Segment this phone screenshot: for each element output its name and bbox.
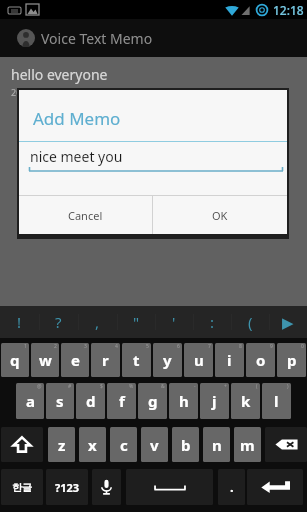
- staticText: 0: [301, 343, 304, 350]
- button[interactable]: z: [48, 427, 75, 462]
- staticText: Add Memo: [33, 107, 121, 130]
- staticText: 한글: [12, 481, 32, 494]
- staticText: (: [248, 312, 253, 332]
- staticText: -: [194, 383, 196, 390]
- button[interactable]: e: [61, 343, 89, 377]
- button[interactable]: t: [122, 343, 151, 377]
- staticText: o: [256, 350, 266, 370]
- staticText: m: [240, 435, 255, 455]
- button[interactable]: ▶: [269, 306, 307, 338]
- staticText: p: [287, 350, 297, 370]
- staticText: l: [274, 391, 279, 411]
- staticText: Voice Text Memo: [41, 29, 153, 48]
- button[interactable]: l: [262, 383, 291, 419]
- staticText: 8: [239, 343, 242, 350]
- staticText: $: [100, 383, 103, 390]
- staticText: !: [17, 312, 22, 332]
- button[interactable]: ?123: [46, 469, 88, 505]
- button[interactable]: Voice input: [92, 469, 121, 505]
- staticText: ▶: [282, 314, 294, 331]
- staticText: Cancel: [68, 208, 103, 223]
- button[interactable]: p: [277, 343, 306, 377]
- staticText: g: [148, 391, 158, 411]
- button[interactable]: c: [110, 427, 137, 462]
- button[interactable]: j: [200, 383, 229, 419]
- button[interactable]: i: [215, 343, 244, 377]
- button[interactable]: m: [234, 427, 261, 462]
- staticText: v: [150, 435, 159, 455]
- staticText: @: [37, 383, 42, 390]
- button[interactable]: y: [153, 343, 182, 377]
- button[interactable]: k: [231, 383, 260, 419]
- button[interactable]: g: [138, 383, 167, 419]
- button[interactable]: u: [184, 343, 213, 377]
- button[interactable]: Cancel: [19, 196, 152, 234]
- staticText: hello everyone: [11, 65, 108, 84]
- other: Space: [153, 484, 187, 491]
- staticText: %: [129, 383, 134, 390]
- button[interactable]: n: [203, 427, 230, 462]
- button[interactable]: :: [193, 306, 231, 338]
- staticText: ': [172, 312, 176, 332]
- button[interactable]: d: [76, 383, 105, 419]
- staticText: s: [56, 391, 64, 411]
- staticText: ,: [95, 312, 100, 332]
- button[interactable]: Space: [126, 469, 213, 505]
- button[interactable]: x: [79, 427, 106, 462]
- button[interactable]: Shift: [1, 427, 43, 462]
- staticText: f: [119, 391, 125, 411]
- button[interactable]: s: [46, 383, 74, 419]
- button[interactable]: q: [1, 343, 29, 377]
- staticText: d: [86, 391, 96, 411]
- staticText: nice meet you: [30, 147, 123, 166]
- button[interactable]: 한글: [1, 469, 43, 505]
- button[interactable]: f: [107, 383, 136, 419]
- staticText: &: [161, 383, 165, 390]
- button[interactable]: ,: [78, 306, 117, 338]
- button[interactable]: o: [246, 343, 275, 377]
- staticText: b: [181, 435, 191, 455]
- staticText: 5: [146, 343, 149, 350]
- staticText: k: [241, 391, 251, 411]
- staticText: :: [210, 312, 215, 332]
- button[interactable]: v: [141, 427, 168, 462]
- other: Delete: [275, 439, 298, 450]
- staticText: 20: [11, 86, 22, 98]
- button[interactable]: (: [231, 306, 269, 338]
- button[interactable]: Delete: [265, 427, 307, 462]
- button[interactable]: OK: [153, 196, 287, 234]
- staticText: r: [102, 350, 109, 370]
- button[interactable]: h: [169, 383, 198, 419]
- staticText: ?: [55, 312, 62, 332]
- button[interactable]: a: [16, 383, 44, 419]
- staticText: i: [227, 350, 232, 370]
- button[interactable]: !: [0, 306, 39, 338]
- staticText: e: [71, 350, 80, 370]
- staticText: OK: [212, 208, 228, 223]
- staticText: a: [26, 391, 35, 411]
- other: Shift: [13, 436, 31, 453]
- button[interactable]: b: [172, 427, 199, 462]
- staticText: y: [163, 350, 172, 370]
- staticText: (: [256, 383, 258, 390]
- button[interactable]: r: [91, 343, 120, 377]
- staticText: 6: [177, 343, 180, 350]
- button[interactable]: ": [117, 306, 155, 338]
- button[interactable]: .: [218, 469, 245, 505]
- button[interactable]: Enter: [247, 469, 303, 505]
- other: Enter: [261, 481, 290, 493]
- staticText: #: [68, 383, 72, 390]
- staticText: ): [287, 383, 289, 390]
- staticText: 2: [54, 343, 57, 350]
- staticText: 7: [208, 343, 211, 350]
- staticText: j: [212, 391, 217, 411]
- staticText: u: [194, 350, 204, 370]
- staticText: ": [133, 312, 140, 332]
- staticText: 9: [270, 343, 273, 350]
- button[interactable]: ': [155, 306, 193, 338]
- button[interactable]: w: [31, 343, 59, 377]
- other: Voice input: [100, 478, 113, 496]
- staticText: c: [120, 435, 128, 455]
- button[interactable]: ?: [39, 306, 78, 338]
- staticText: n: [212, 435, 222, 455]
